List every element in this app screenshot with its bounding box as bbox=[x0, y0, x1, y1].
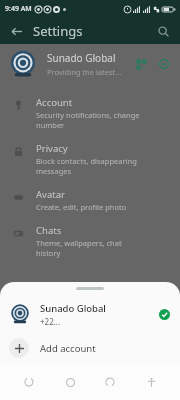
button[interactable]: Avatar bbox=[0, 182, 180, 218]
staticText: Create, edit, profile photo bbox=[36, 202, 127, 212]
button[interactable]: Accessibility bbox=[140, 371, 162, 393]
staticText: Security notifications, change number bbox=[36, 110, 140, 130]
button[interactable]: Privacy bbox=[0, 136, 180, 182]
button[interactable]: Search bbox=[154, 22, 172, 40]
button[interactable]: Expand bbox=[156, 56, 172, 72]
button[interactable]: Recents bbox=[18, 371, 40, 393]
button[interactable]: QR code bbox=[133, 56, 149, 72]
button[interactable]: Back bbox=[99, 371, 121, 393]
staticText: Chats bbox=[36, 224, 62, 237]
staticText: Privacy bbox=[36, 142, 68, 155]
button[interactable]: Home bbox=[59, 371, 81, 393]
staticText: Theme, wallpapers, chat history bbox=[36, 238, 122, 258]
button[interactable]: Sunado Global bbox=[0, 44, 180, 84]
button[interactable]: Chats bbox=[0, 218, 180, 264]
staticText: Account bbox=[36, 96, 73, 109]
button[interactable]: Sunado Global bbox=[0, 299, 180, 329]
staticText: Sunado Global bbox=[47, 51, 116, 65]
staticText: +22... bbox=[40, 316, 61, 327]
staticText: Sunado Global bbox=[40, 302, 106, 315]
button[interactable]: Account bbox=[0, 90, 180, 136]
staticText: Block contacts, disappearing messages bbox=[36, 156, 137, 176]
button[interactable]: Selected account bbox=[158, 308, 171, 321]
button[interactable]: Add account bbox=[0, 335, 180, 361]
staticText: Providing the latest... bbox=[47, 67, 122, 77]
staticText: Settings bbox=[33, 22, 83, 40]
staticText: 9:49 AM bbox=[5, 4, 32, 14]
staticText: Avatar bbox=[36, 188, 65, 201]
staticText: Add account bbox=[40, 342, 96, 355]
button[interactable]: Back bbox=[8, 23, 24, 39]
